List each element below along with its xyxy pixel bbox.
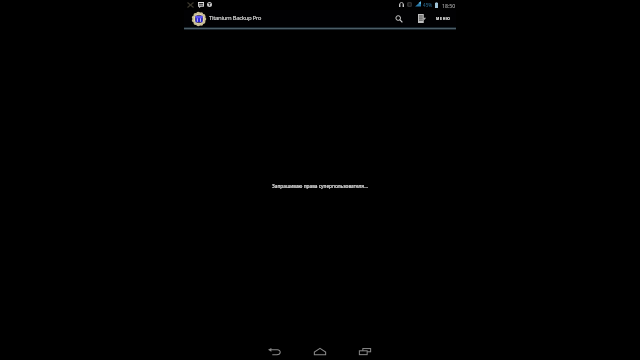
staticText: МЕНЮ <box>436 16 451 21</box>
button[interactable]: Home <box>314 348 326 355</box>
button[interactable]: Batch actions <box>412 10 432 27</box>
button[interactable]: Recent apps <box>359 348 371 355</box>
staticText: Titanium Backup Pro <box>209 13 262 21</box>
staticText: 45% <box>423 2 433 8</box>
button[interactable]: Search <box>389 10 409 27</box>
staticText: Запрашиваю права суперпользователя... <box>272 183 368 190</box>
staticText: 18:50 <box>442 2 456 9</box>
button[interactable]: МЕНЮ <box>431 10 456 27</box>
button[interactable]: Titanium Backup Pro <box>184 10 268 27</box>
button[interactable]: Back <box>268 348 281 355</box>
